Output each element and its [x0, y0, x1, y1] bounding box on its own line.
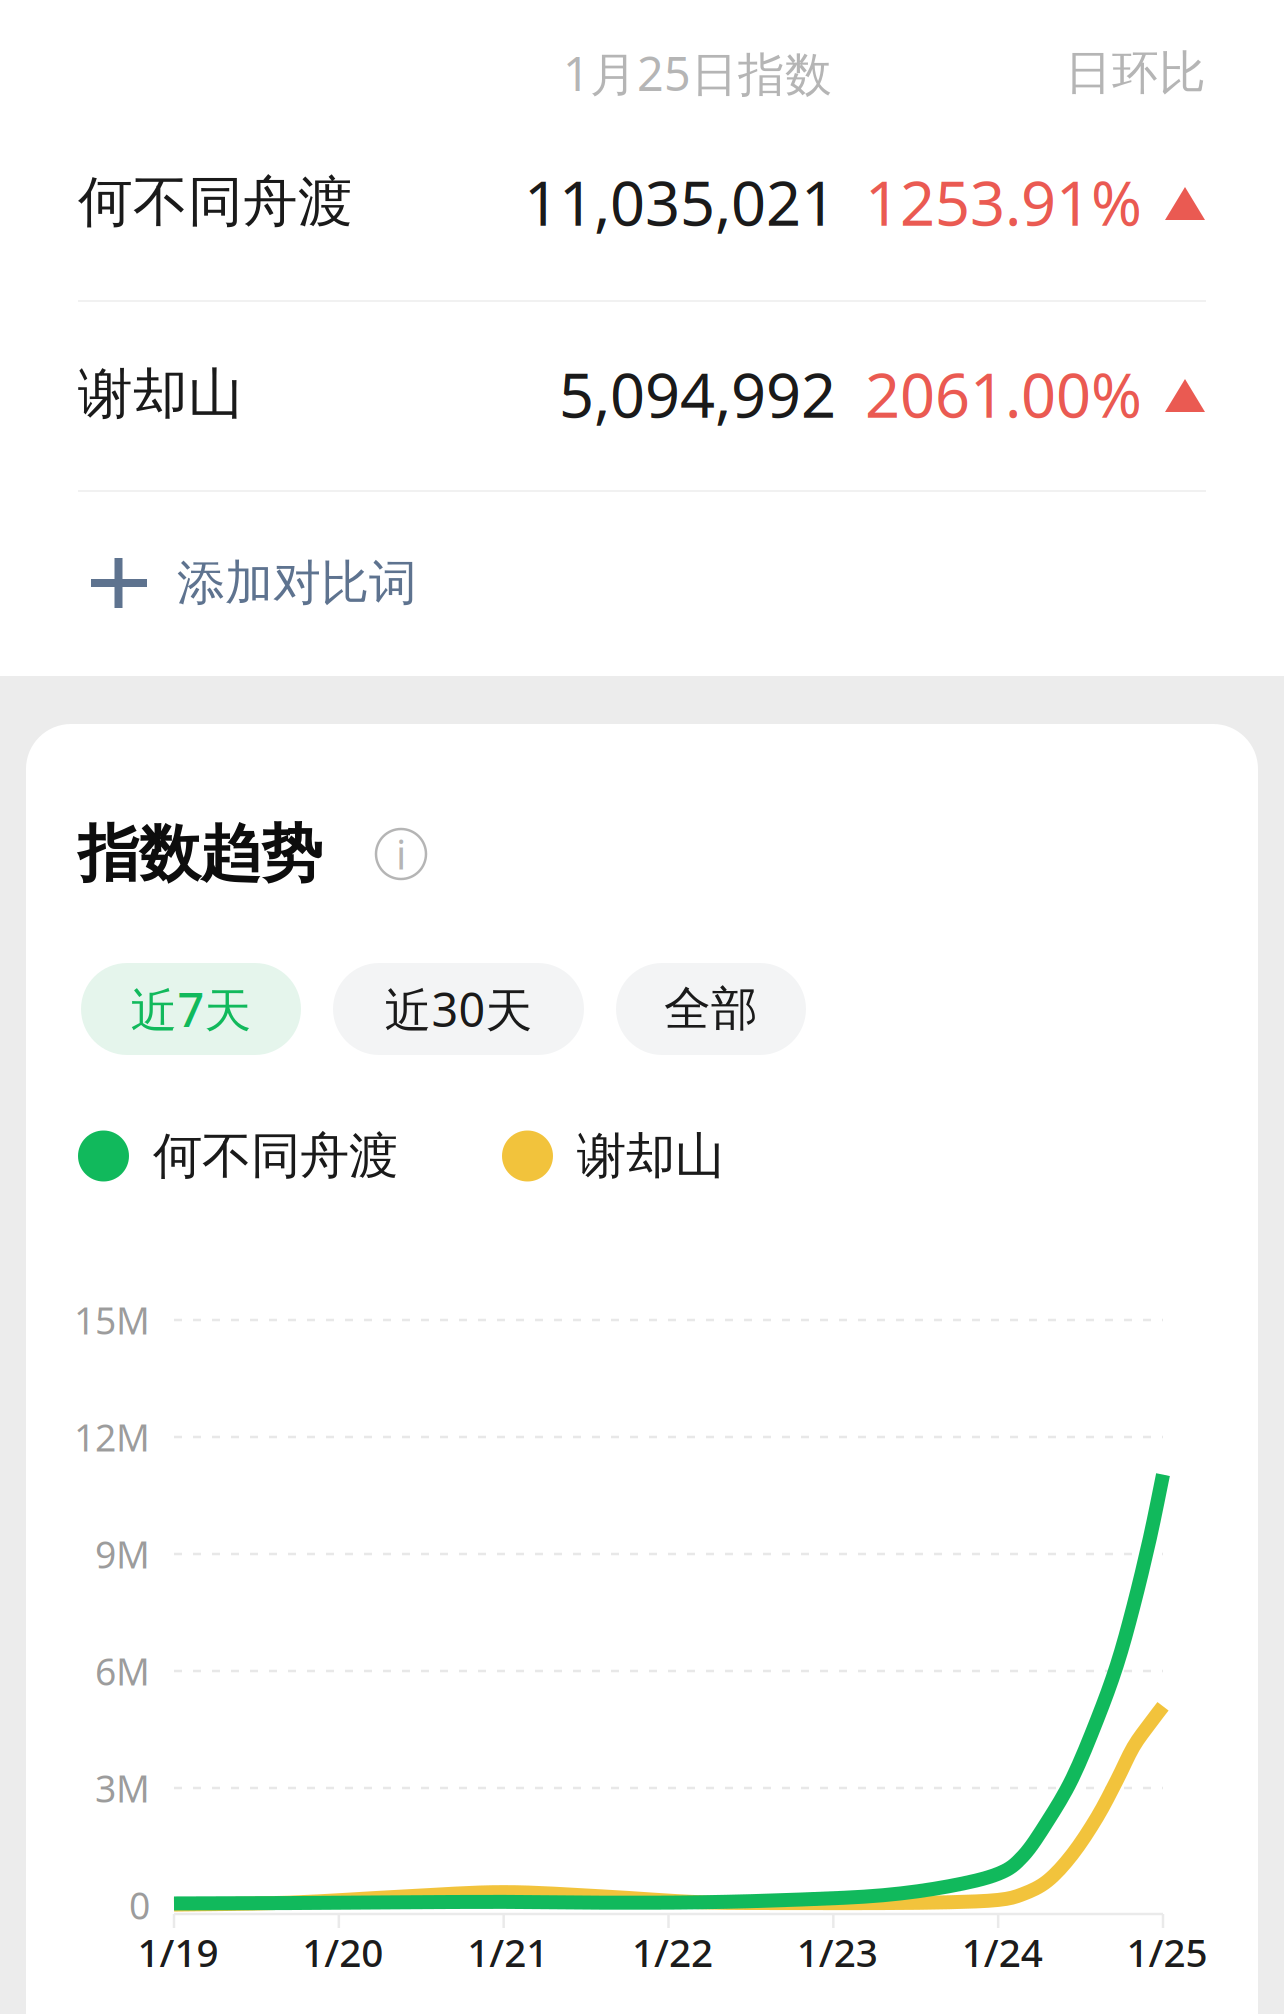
staticText: 1月25日指数: [563, 42, 832, 104]
staticText: 1/19: [137, 1926, 218, 1978]
staticText: 1/21: [467, 1926, 548, 1978]
staticText: 9M: [95, 1529, 150, 1579]
staticText: 1/25: [1126, 1926, 1207, 1978]
staticText: 5,094,992: [559, 353, 836, 435]
staticText: 12M: [74, 1412, 150, 1462]
staticText: 2061.00%: [865, 353, 1142, 435]
button[interactable]: 添加对比词: [0, 490, 1284, 676]
staticText: 近7天: [130, 978, 251, 1040]
staticText: 谢却山: [577, 1126, 724, 1186]
staticText: 日环比: [1065, 44, 1206, 102]
staticText: 何不同舟渡: [153, 1126, 398, 1186]
staticText: 添加对比词: [177, 553, 417, 612]
staticText: 11,035,021: [524, 161, 836, 243]
staticText: 0: [129, 1880, 150, 1930]
button[interactable]: 谢却山: [0, 363, 1284, 425]
staticText: 1/20: [302, 1926, 383, 1978]
staticText: 1/23: [797, 1926, 878, 1978]
staticText: 谢却山: [78, 360, 243, 427]
staticText: 指数趋势: [78, 816, 322, 892]
staticText: 6M: [95, 1646, 150, 1696]
staticText: i: [396, 827, 406, 880]
button[interactable]: 何不同舟渡: [0, 171, 1284, 233]
button[interactable]: 全部: [616, 963, 806, 1055]
button[interactable]: 关于指数趋势: [376, 829, 426, 879]
button[interactable]: 近30天: [333, 963, 584, 1055]
staticText: 1/22: [632, 1926, 713, 1978]
staticText: 3M: [95, 1763, 150, 1813]
staticText: 15M: [74, 1295, 150, 1345]
staticText: 近30天: [384, 978, 532, 1040]
staticText: 何不同舟渡: [78, 168, 353, 235]
staticText: 全部: [664, 980, 758, 1038]
staticText: 1/24: [962, 1926, 1043, 1978]
staticText: 1253.91%: [865, 161, 1142, 243]
button[interactable]: 近7天: [81, 963, 301, 1055]
